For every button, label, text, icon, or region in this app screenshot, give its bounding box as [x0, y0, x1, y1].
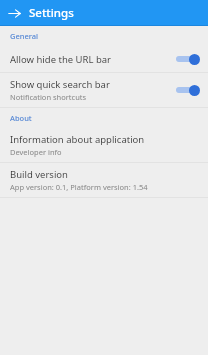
button[interactable]: Allow hide the URL bar — [0, 46, 208, 72]
staticText: Developer info — [10, 147, 62, 157]
button[interactable]: Build version — [0, 163, 208, 197]
button[interactable]: Information about application — [0, 128, 208, 162]
staticText: App version: 0.1, Platform version: 1.54 — [10, 182, 148, 192]
button[interactable]: Navigate forward — [4, 3, 24, 23]
staticText: Allow hide the URL bar — [10, 53, 111, 66]
staticText: Settings — [29, 5, 74, 21]
staticText: Information about application — [10, 133, 145, 146]
button[interactable]: Toggle setting — [173, 83, 200, 97]
button[interactable]: Show quick search bar — [0, 73, 208, 107]
staticText: Notification shortcuts — [10, 92, 87, 102]
staticText: About — [10, 113, 32, 123]
staticText: Build version — [10, 168, 68, 181]
button[interactable]: Toggle setting — [173, 52, 200, 66]
staticText: Show quick search bar — [10, 78, 110, 91]
staticText: General — [10, 31, 39, 41]
